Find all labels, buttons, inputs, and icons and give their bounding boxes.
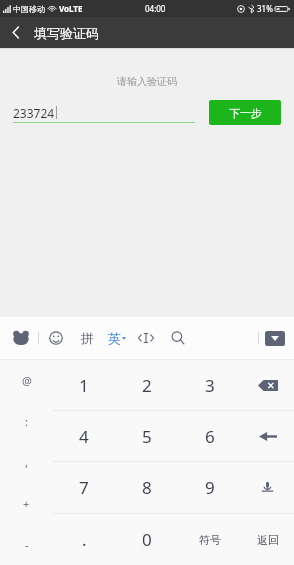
button[interactable]: 1 [53, 360, 115, 410]
button[interactable]: . [53, 514, 115, 565]
staticText: 0 [142, 528, 152, 551]
staticText: 6 [205, 425, 215, 448]
button[interactable]: Voice input [241, 462, 294, 513]
staticText: 返回 [257, 533, 279, 547]
button[interactable]: 符号 [178, 514, 241, 565]
button[interactable]: 7 [53, 462, 115, 513]
staticText: 4 [79, 425, 89, 448]
button[interactable]: 5 [115, 411, 178, 461]
staticText: 符号 [199, 533, 221, 547]
button[interactable]: @ [0, 360, 53, 401]
button[interactable]: , [0, 442, 53, 483]
staticText: : [25, 414, 28, 429]
staticText: , [25, 455, 28, 470]
button[interactable]: Enter [241, 411, 294, 461]
staticText: 下一步 [229, 106, 262, 120]
staticText: 2 [142, 374, 152, 397]
staticText: 1 [79, 374, 89, 397]
staticText: 233724 [13, 105, 55, 121]
button[interactable]: Backspace [241, 360, 294, 410]
staticText: 请输入验证码 [0, 75, 294, 88]
button[interactable]: 返回 [241, 514, 294, 565]
staticText: 7 [79, 476, 89, 499]
button[interactable]: 6 [178, 411, 241, 461]
staticText: 04:00 [145, 3, 166, 14]
staticText: VoLTE [59, 3, 83, 14]
button[interactable]: 233724 [13, 103, 195, 123]
staticText: 中国移动 [13, 4, 45, 14]
button[interactable]: 2 [115, 360, 178, 410]
staticText: - [25, 537, 29, 552]
button[interactable]: 英 [108, 326, 126, 350]
staticText: 3 [205, 374, 215, 397]
staticText: 8 [142, 476, 152, 499]
button[interactable]: Hide keyboard [265, 331, 285, 346]
button[interactable]: 9 [178, 462, 241, 513]
button[interactable]: 4 [53, 411, 115, 461]
button[interactable]: Back [0, 17, 32, 48]
button[interactable]: Move cursor [134, 326, 158, 350]
button[interactable]: 下一步 [209, 100, 281, 125]
staticText: + [23, 496, 30, 511]
button[interactable]: 0 [115, 514, 178, 565]
button[interactable]: + [0, 483, 53, 524]
staticText: 填写验证码 [34, 25, 99, 41]
button[interactable]: 3 [178, 360, 241, 410]
button[interactable]: : [0, 401, 53, 442]
button[interactable]: 8 [115, 462, 178, 513]
staticText: 9 [205, 476, 215, 499]
button[interactable]: Input method settings [9, 326, 33, 350]
button[interactable]: Emoji [44, 326, 68, 350]
button[interactable]: 拼 [75, 326, 99, 350]
staticText: 31% [257, 3, 273, 14]
button[interactable]: Search [166, 326, 190, 350]
button[interactable]: - [0, 524, 53, 565]
staticText: @ [22, 373, 32, 388]
staticText: . [82, 528, 87, 551]
staticText: 5 [142, 425, 152, 448]
staticText: 拼 [81, 330, 94, 346]
staticText: 英 [108, 330, 121, 346]
